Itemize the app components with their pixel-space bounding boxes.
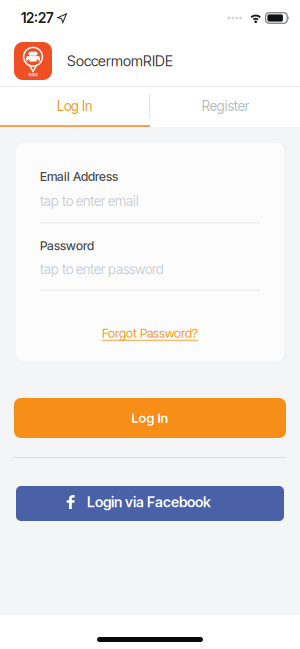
button[interactable]: Forgot Password? (102, 326, 198, 341)
staticText: Email Address (40, 169, 118, 184)
staticText: SoccermomRIDE (67, 52, 173, 70)
staticText: Log In (131, 410, 168, 426)
button[interactable]: Register (150, 87, 300, 125)
staticText: tap to enter password (40, 261, 164, 278)
staticText: Forgot Password? (102, 326, 198, 341)
staticText: Register (202, 98, 249, 114)
button[interactable]: Log In (0, 87, 149, 125)
staticText: RIDE (28, 72, 37, 77)
button[interactable]: Log In (14, 398, 286, 438)
staticText: Log In (57, 98, 92, 114)
button[interactable]: Login via Facebook (16, 486, 284, 521)
staticText: Password (40, 238, 94, 253)
button[interactable]: tap to enter email (40, 184, 260, 223)
staticText: 12:27 (21, 9, 54, 26)
staticText: tap to enter email (40, 193, 139, 209)
button[interactable]: tap to enter password (40, 253, 260, 291)
staticText: Login via Facebook (87, 493, 211, 511)
